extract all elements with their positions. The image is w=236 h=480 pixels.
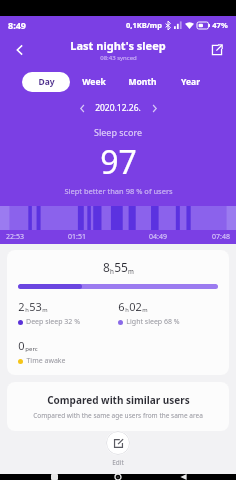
staticText: Week [82,76,106,88]
staticText: h [110,267,114,275]
staticText: Slept better than 98 % of users [64,186,173,196]
staticText: 53 [29,299,42,314]
staticText: 2 [18,299,25,314]
staticText: 55 [114,259,128,275]
staticText: 08:43 synced [100,54,137,62]
staticText: 07:48 [212,232,230,242]
staticText: 97 [100,140,137,184]
staticText: perc [25,345,38,353]
staticText: Light sleep 68 % [126,317,180,327]
staticText: Day [38,76,55,88]
button[interactable]: Month [118,72,166,92]
button[interactable]: Previous day [75,101,89,115]
staticText: Month [128,76,157,88]
staticText: 0,1KB/mp [126,20,162,30]
staticText: 47% [212,20,228,30]
staticText: 0 [18,338,25,353]
staticText: Sleep score [94,126,142,138]
staticText: 01:51 [68,232,86,242]
staticText: 8:49 [8,19,26,31]
staticText: h [125,306,129,314]
button[interactable]: Compared with similar users [7,382,229,431]
button[interactable]: Share [204,37,230,63]
button[interactable]: Year [166,72,214,92]
staticText: Compared with similar users [47,393,190,407]
staticText: 8 [103,259,110,275]
button[interactable]: 8 [7,250,229,375]
button[interactable]: Back [6,36,34,64]
staticText: m [142,306,148,314]
staticText: Time awake [26,356,66,366]
button[interactable]: Day [22,72,70,92]
staticText: Year [181,76,200,88]
staticText: 04:49 [149,232,167,242]
button[interactable]: Recents [43,474,65,480]
staticText: Compared with the same age users from th… [33,411,203,420]
staticText: m [42,306,48,314]
staticText: h [25,306,29,314]
button[interactable]: Next day [147,101,161,115]
staticText: 22:53 [6,232,24,242]
staticText: 02 [129,299,142,314]
staticText: m [128,267,134,275]
button[interactable]: Back [172,474,194,480]
staticText: Deep sleep 32 % [26,317,80,327]
staticText: 6 [118,299,125,314]
button[interactable]: Edit [0,431,236,467]
staticText: Last night's sleep [70,38,166,53]
button[interactable]: Home [107,474,129,480]
staticText: Edit [112,458,124,467]
staticText: 2020.12.26. [95,102,141,114]
button[interactable]: Week [70,72,118,92]
